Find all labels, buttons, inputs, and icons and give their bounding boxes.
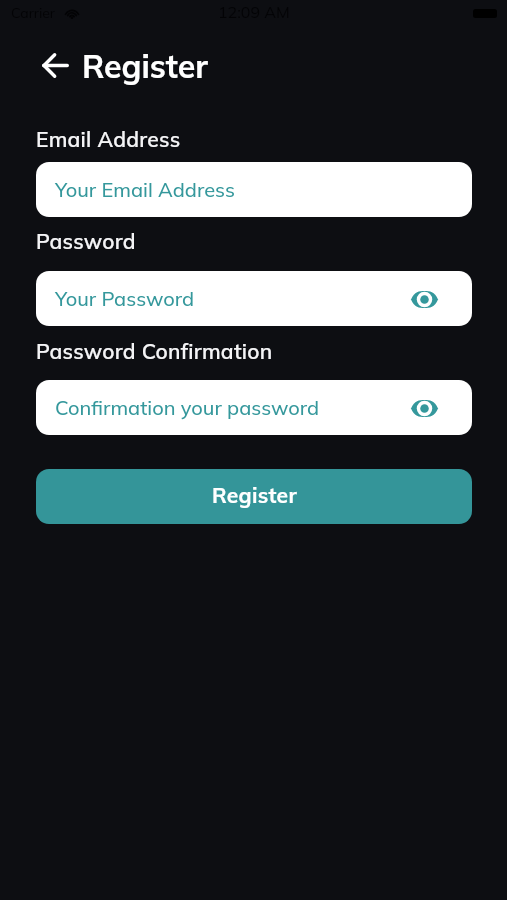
staticText: Email Address [36,126,181,152]
staticText: Your Password [55,286,195,311]
staticText: Register [82,46,208,86]
staticText: Confirmation your password [55,395,320,420]
staticText: 12:09 AM [218,2,290,22]
staticText: Register [212,482,297,508]
button[interactable]: Your Password [36,271,472,326]
staticText: Your Email Address [55,177,235,202]
staticText: Carrier [11,4,55,22]
staticText: Password [36,228,136,254]
button[interactable]: Show password [404,279,444,319]
staticText: Password Confirmation [36,338,273,364]
button[interactable]: Show password [404,388,444,428]
button[interactable]: Your Email Address [36,162,472,217]
button[interactable]: Register [36,469,472,524]
button[interactable]: Confirmation your password [36,380,472,435]
button[interactable]: Back [36,46,75,85]
